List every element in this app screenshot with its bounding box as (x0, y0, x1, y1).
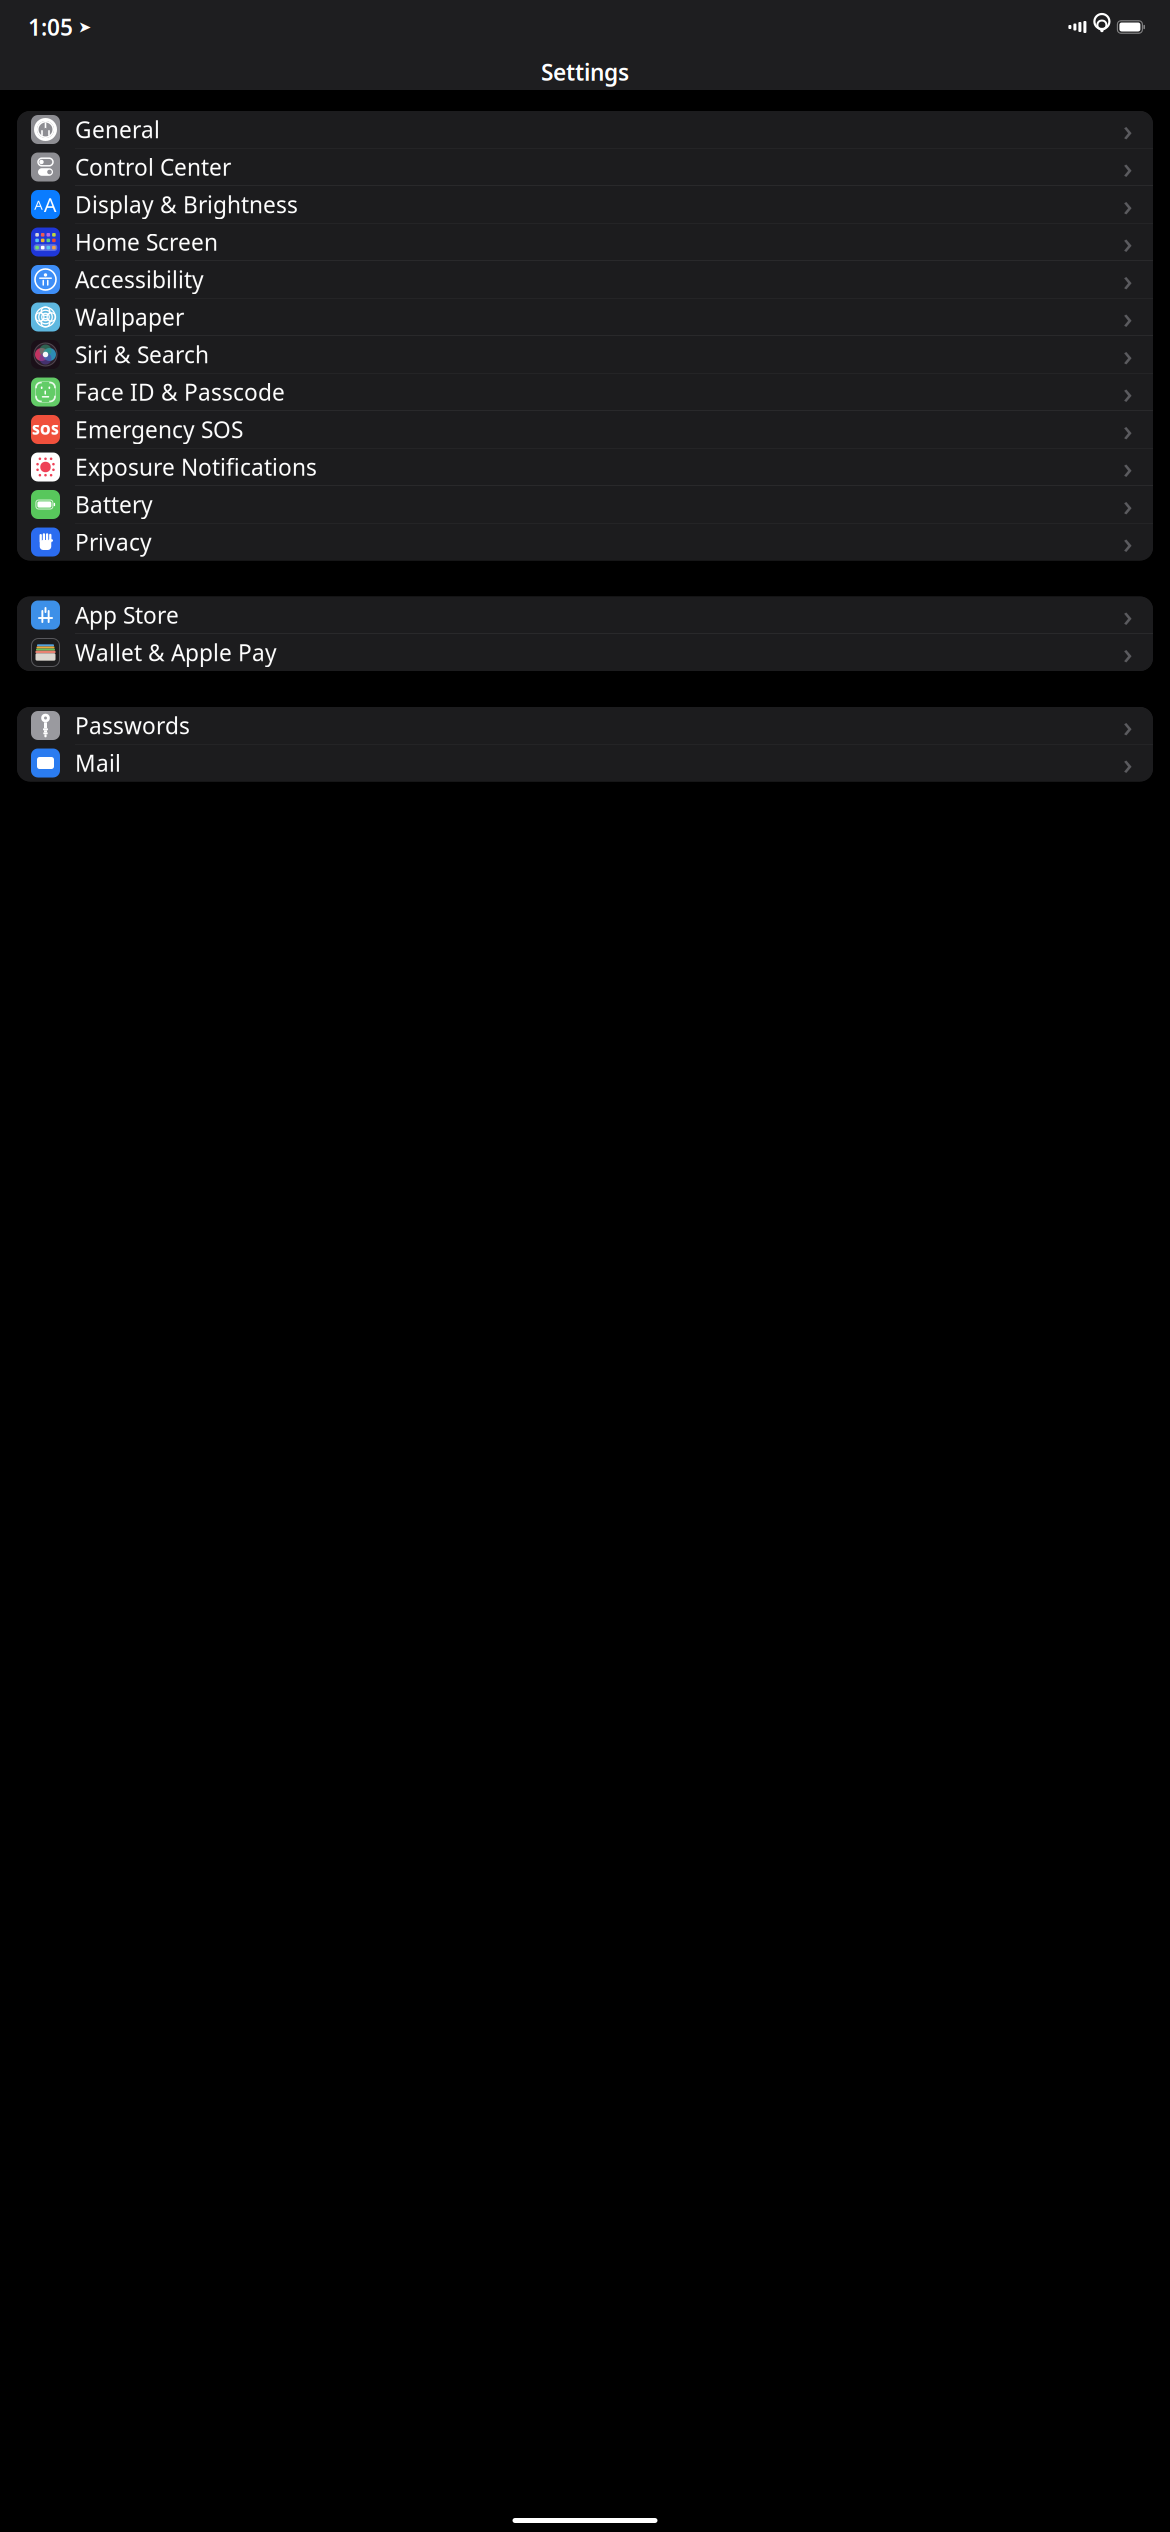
staticText: Mail (75, 748, 121, 778)
staticText: Display & Brightness (75, 189, 298, 219)
staticText: Privacy (75, 527, 152, 557)
button[interactable]: Siri & Search (17, 336, 1153, 373)
staticText: Emergency SOS (75, 414, 243, 444)
staticText: Siri & Search (75, 339, 209, 369)
staticText: Accessibility (75, 264, 204, 294)
staticText: › (1123, 260, 1133, 299)
button[interactable]: Mail (17, 744, 1153, 781)
button[interactable]: Home Screen (17, 223, 1153, 261)
staticText: › (1123, 743, 1133, 782)
button[interactable]: A (17, 186, 1153, 223)
staticText: 1:05 (28, 12, 73, 42)
staticText: Passwords (75, 710, 190, 740)
button[interactable]: Wallpaper (17, 298, 1153, 336)
staticText: › (1123, 185, 1133, 224)
staticText: Face ID & Passcode (75, 377, 285, 407)
staticText: › (1123, 706, 1133, 745)
staticText: › (1123, 447, 1133, 486)
button[interactable]: Exposure Notifications (17, 448, 1153, 486)
staticText: › (1123, 410, 1133, 449)
button[interactable]: Control Center (17, 148, 1153, 186)
staticText: › (1123, 595, 1133, 634)
staticText: Control Center (75, 152, 231, 182)
staticText: General (75, 114, 160, 144)
staticText: App Store (75, 600, 179, 630)
button[interactable]: Face ID & Passcode (17, 373, 1153, 411)
staticText: Home Screen (75, 227, 218, 257)
button[interactable]: Accessibility (17, 261, 1153, 298)
button[interactable]: Battery (17, 486, 1153, 523)
staticText: Wallet & Apple Pay (75, 637, 277, 667)
staticText: SOS (32, 421, 59, 438)
staticText: Battery (75, 489, 153, 519)
staticText: ➤ (78, 18, 91, 36)
staticText: › (1123, 297, 1133, 336)
button[interactable]: General (17, 111, 1153, 148)
button[interactable]: Passwords (17, 707, 1153, 744)
staticText: Wallpaper (75, 302, 184, 332)
staticText: › (1123, 222, 1133, 261)
button[interactable]: Privacy (17, 523, 1153, 560)
staticText: › (1123, 147, 1133, 186)
staticText: A (34, 196, 43, 213)
staticText: A (44, 191, 57, 218)
staticText: Exposure Notifications (75, 452, 317, 482)
staticText: › (1123, 335, 1133, 374)
staticText: › (1123, 485, 1133, 524)
staticText: › (1123, 522, 1133, 561)
button[interactable]: SOS (17, 411, 1153, 448)
button[interactable]: Wallet & Apple Pay (17, 634, 1153, 671)
staticText: Settings (541, 57, 629, 87)
staticText: › (1123, 110, 1133, 149)
staticText: › (1123, 633, 1133, 672)
button[interactable]: App Store (17, 596, 1153, 634)
staticText: › (1123, 372, 1133, 411)
